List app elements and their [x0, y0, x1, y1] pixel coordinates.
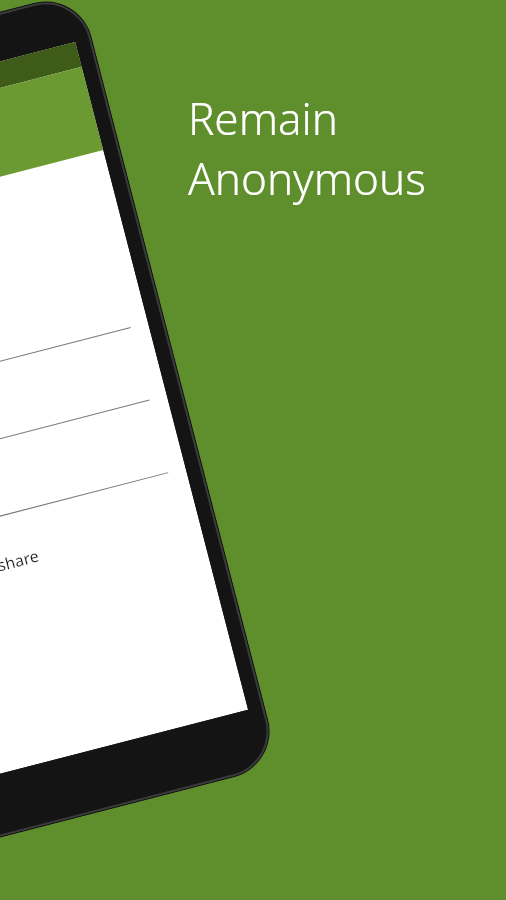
button[interactable]: Remain — [188, 88, 426, 208]
staticText: Anonymous — [188, 148, 426, 208]
button[interactable]: Phone number: — [0, 422, 174, 572]
other: App screenshot shown on a phone — [0, 0, 280, 861]
staticText: Remain — [188, 88, 338, 148]
button[interactable]: Email address: — [0, 349, 155, 500]
staticText: I do not want to share my name. — [0, 544, 47, 631]
button[interactable]: Any information you give us — [0, 67, 103, 237]
button[interactable]: Your name: — [0, 277, 136, 427]
